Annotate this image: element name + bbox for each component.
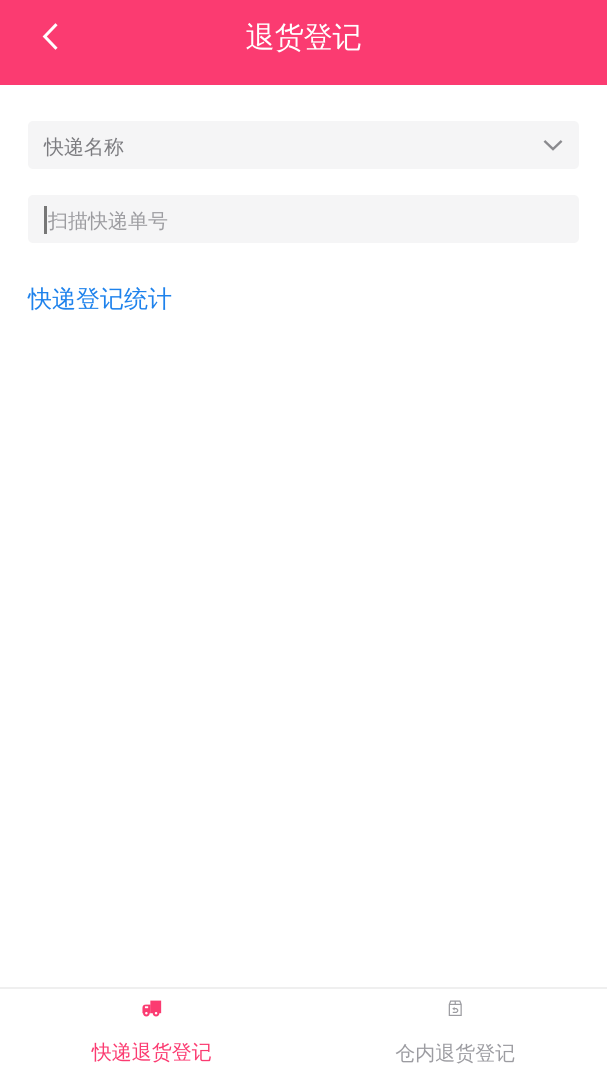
button[interactable]: 快递登记统计 xyxy=(28,283,172,315)
staticText: 仓内退货登记 xyxy=(395,1041,515,1066)
staticText: 退货登记 xyxy=(245,19,361,55)
button[interactable]: Back xyxy=(0,12,80,72)
staticText: 快递名称 xyxy=(44,135,124,159)
staticText: 快递退货登记 xyxy=(92,1040,212,1065)
button[interactable]: 快递退货登记 xyxy=(0,989,303,1080)
staticText: 快递登记统计 xyxy=(28,284,172,314)
button[interactable]: 扫描快递单号 xyxy=(28,195,579,243)
button[interactable]: 仓内退货登记 xyxy=(303,989,607,1080)
staticText: 扫描快递单号 xyxy=(48,209,168,233)
button[interactable]: 快递名称 xyxy=(28,121,579,169)
